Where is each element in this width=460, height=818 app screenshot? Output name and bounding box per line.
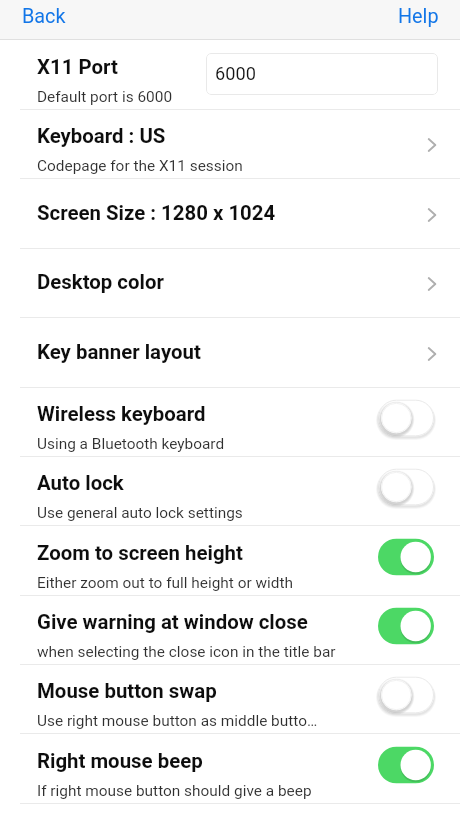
button[interactable]: Back (0, 0, 230, 40)
button[interactable]: Give warning at window close (0, 596, 460, 665)
button[interactable]: 6000 (206, 53, 438, 95)
staticText: 6000 (215, 63, 256, 84)
staticText: Codepage for the X11 session (37, 157, 243, 175)
staticText: Auto lock (37, 471, 124, 495)
staticText: If right mouse button should give a beep (37, 782, 312, 800)
staticText: Key banner layout (37, 340, 201, 364)
staticText: Default port is 6000 (37, 88, 173, 106)
button[interactable]: Mouse button swap (0, 665, 460, 734)
button[interactable]: Toggle off (377, 467, 435, 507)
staticText: Help (398, 5, 439, 28)
button[interactable]: Toggle on (377, 537, 435, 577)
staticText: Use general auto lock settings (37, 504, 243, 522)
button[interactable]: Toggle on (377, 745, 435, 785)
button[interactable]: Auto lock (0, 457, 460, 526)
other: Open (409, 202, 435, 228)
button[interactable]: Key banner layout (0, 319, 460, 388)
button[interactable]: Toggle off (377, 398, 435, 438)
staticText: when selecting the close icon in the tit… (37, 643, 336, 661)
staticText: Use right mouse button as middle butto… (37, 712, 318, 730)
other: Open (409, 271, 435, 297)
staticText: Right mouse beep (37, 749, 203, 773)
staticText: Mouse button swap (37, 679, 217, 703)
button[interactable]: Toggle on (377, 606, 435, 646)
staticText: Screen Size : 1280 x 1024 (37, 201, 276, 225)
button[interactable]: Help (230, 0, 460, 40)
button[interactable]: Toggle off (377, 675, 435, 715)
staticText: Zoom to screen height (37, 541, 243, 565)
button[interactable]: Zoom to screen height (0, 527, 460, 596)
staticText: Keyboard : US (37, 124, 166, 148)
staticText: Give warning at window close (37, 610, 308, 634)
staticText: Wireless keyboard (37, 402, 206, 426)
staticText: Back (22, 5, 66, 28)
staticText: Desktop color (37, 270, 164, 294)
button[interactable]: Keyboard : US (0, 110, 460, 179)
other: Open (409, 132, 435, 158)
staticText: Either zoom out to full height or width (37, 574, 293, 592)
button[interactable]: Screen Size : 1280 x 1024 (0, 180, 460, 249)
other: Open (409, 341, 435, 367)
button[interactable]: Wireless keyboard (0, 388, 460, 457)
button[interactable]: Desktop color (0, 249, 460, 318)
staticText: Using a Bluetooth keyboard (37, 435, 225, 453)
button[interactable]: Right mouse beep (0, 735, 460, 804)
staticText: X11 Port (37, 55, 118, 79)
